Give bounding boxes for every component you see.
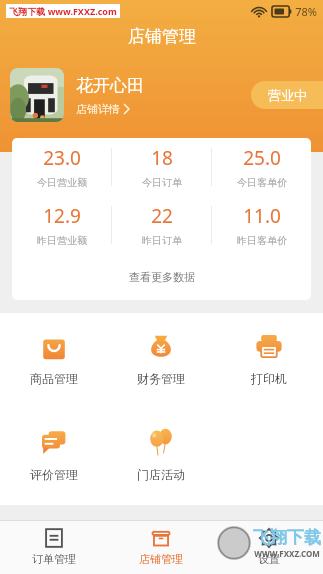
staticText: 商品管理 (30, 371, 78, 386)
staticText: 营业中 (268, 87, 307, 103)
button[interactable]: 评价管理 (0, 409, 107, 505)
staticText: 11.0 (243, 203, 281, 229)
button[interactable]: 11.0 (212, 196, 311, 254)
staticText: 店铺管理 (139, 552, 183, 566)
staticText: 评价管理 (30, 467, 78, 482)
button[interactable]: 店铺管理 (107, 520, 215, 574)
button[interactable]: 门店活动 (107, 409, 215, 505)
staticText: 设置 (258, 552, 280, 566)
staticText: 18 (151, 145, 173, 171)
button[interactable]: 设置 (215, 520, 323, 574)
staticText: 打印机 (251, 371, 287, 386)
staticText: 22 (151, 203, 173, 229)
staticText: 店铺管理 (128, 26, 196, 47)
staticText: 店铺详情 (76, 102, 120, 116)
button[interactable] (10, 68, 64, 122)
staticText: WWW.FXXZ.COM (254, 548, 320, 559)
button[interactable]: 25.0 (212, 138, 311, 196)
button[interactable]: 22 (112, 196, 211, 254)
staticText: 12.9 (43, 203, 81, 229)
staticText: 查看更多数据 (129, 270, 195, 284)
staticText: 昨日营业额 (37, 234, 87, 247)
staticText: 门店活动 (137, 467, 185, 482)
staticText: 25.0 (243, 145, 281, 171)
staticText: 昨日客单价 (237, 234, 287, 247)
button[interactable]: 查看更多数据 (12, 254, 311, 300)
button[interactable]: 花开心田 (76, 75, 251, 116)
staticText: 昨日订单 (142, 234, 182, 247)
staticText: 飞翔下载 www.FXXZ.com (9, 5, 117, 17)
button[interactable]: 18 (112, 138, 211, 196)
button[interactable]: 财务管理 (107, 313, 215, 409)
staticText: 78% (295, 4, 317, 19)
staticText: 飞翔下载 (253, 527, 321, 548)
button[interactable]: 营业中 (251, 81, 323, 109)
staticText: 今日营业额 (37, 176, 87, 189)
button[interactable]: 打印机 (215, 313, 323, 409)
staticText: 23.0 (43, 145, 81, 171)
staticText: 订单管理 (32, 552, 76, 566)
button[interactable]: 23.0 (12, 138, 111, 196)
staticText: 花开心田 (76, 75, 144, 96)
staticText: 今日订单 (142, 176, 182, 189)
staticText: 财务管理 (137, 371, 185, 386)
button[interactable]: 12.9 (12, 196, 111, 254)
button[interactable]: 商品管理 (0, 313, 107, 409)
staticText: 今日客单价 (237, 176, 287, 189)
button[interactable]: 订单管理 (0, 520, 107, 574)
